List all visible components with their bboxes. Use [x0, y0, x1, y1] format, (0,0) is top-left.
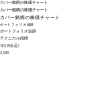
staticText: テクニカル指標: [0, 36, 28, 41]
staticText: カバー銘柄の株価チャート: [0, 14, 60, 20]
staticText: ポートフォリオ追跡: [0, 29, 36, 34]
staticText: カバー銘柄の株価チャート: [0, 0, 48, 5]
staticText: カバー銘柄の株価チャート: [0, 7, 48, 12]
staticText: ポートフォリオ追跡: [0, 22, 33, 27]
staticText: 2,500: [0, 50, 9, 55]
staticText: 1日 (5分足): [0, 43, 19, 48]
